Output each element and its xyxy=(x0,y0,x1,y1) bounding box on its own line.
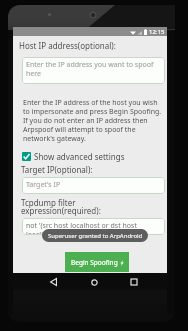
button[interactable]: Target's IP xyxy=(22,177,165,194)
staticText: Tcpdump filter expression(required): xyxy=(21,197,101,216)
button[interactable]: Home xyxy=(85,274,103,290)
button[interactable]: not '(src host localhost or dst host loc… xyxy=(22,218,165,235)
staticText: Host IP address(optional): xyxy=(19,40,116,51)
button[interactable]: Back xyxy=(44,274,62,290)
staticText: Target's IP xyxy=(26,180,61,190)
button[interactable]: Show advanced settings xyxy=(22,151,125,162)
button[interactable]: Recent apps xyxy=(125,274,143,290)
staticText: 12:15 xyxy=(149,28,165,36)
staticText: Enter the IP address of the host you wis… xyxy=(23,98,165,143)
staticText: Target IP(optional): xyxy=(21,164,93,175)
staticText: Show advanced settings xyxy=(34,151,125,162)
button[interactable]: Enter the IP address you want to spoof h… xyxy=(22,57,165,84)
staticText: Begin Spoofing xyxy=(71,258,118,267)
button[interactable]: Begin Spoofing xyxy=(65,252,129,272)
staticText: Superuser granted to ArpAndroid xyxy=(48,232,143,240)
staticText: not '(src host localhost or dst host loc… xyxy=(26,221,137,235)
staticText: Enter the IP address you want to spoof h… xyxy=(26,60,154,78)
